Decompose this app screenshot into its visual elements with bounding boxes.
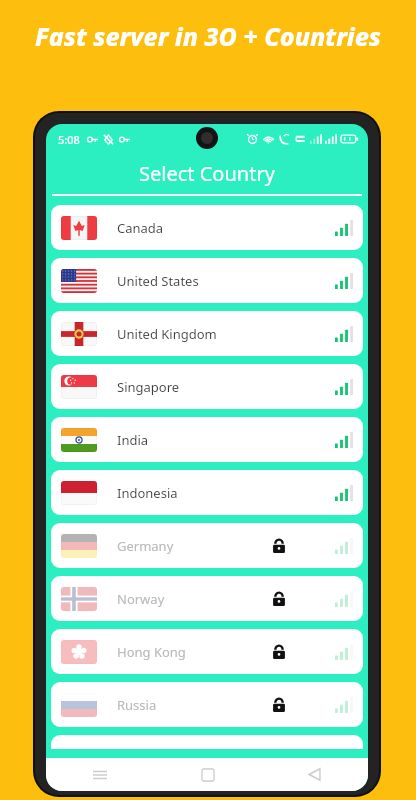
button[interactable]: United States (51, 258, 363, 303)
button[interactable]: Indonesia (51, 470, 363, 515)
button[interactable]: Back (261, 758, 368, 791)
other: Locked (271, 697, 287, 713)
staticText: Fast server in 3O + Countries (35, 19, 381, 53)
staticText: Germany (117, 537, 174, 555)
staticText: United States (117, 272, 199, 290)
button[interactable]: Canada (51, 205, 363, 250)
button[interactable]: Singapore (51, 364, 363, 409)
button[interactable]: Recents (46, 758, 154, 791)
button[interactable]: Home (154, 758, 261, 791)
button[interactable]: India (51, 417, 363, 462)
staticText: Select Country (139, 160, 275, 187)
button[interactable]: United Kingdom (51, 311, 363, 356)
button[interactable]: Norway (51, 576, 363, 621)
staticText: Indonesia (117, 484, 178, 502)
other: Locked (271, 591, 287, 607)
staticText: India (117, 431, 149, 449)
button[interactable]: Russia (51, 682, 363, 727)
button[interactable]: Germany (51, 523, 363, 568)
button[interactable]: Hong Kong (51, 629, 363, 674)
staticText: United Kingdom (117, 325, 217, 343)
staticText: Hong Kong (117, 643, 186, 661)
staticText: Canada (117, 219, 164, 237)
staticText: Singapore (117, 378, 180, 396)
staticText: Norway (117, 590, 165, 608)
other: Locked (271, 644, 287, 660)
staticText: Russia (117, 696, 157, 714)
staticText: 5:08 (58, 132, 80, 147)
other: Locked (271, 538, 287, 554)
